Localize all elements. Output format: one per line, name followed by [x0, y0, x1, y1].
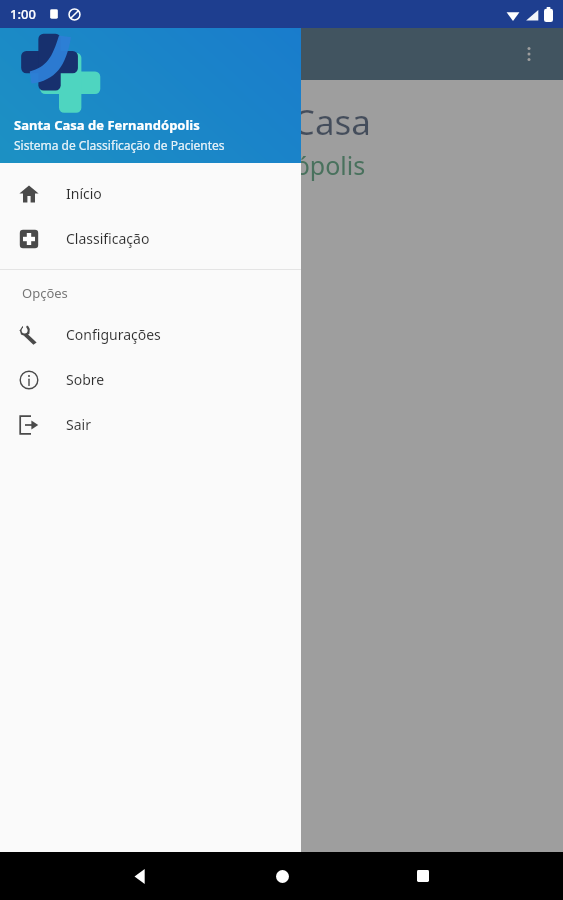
- button[interactable]: More options: [509, 34, 549, 74]
- staticText: Início: [66, 184, 102, 203]
- staticText: 1:00: [10, 5, 36, 23]
- button[interactable]: Home: [262, 856, 302, 896]
- button[interactable]: [0, 28, 563, 852]
- staticText: Fernandópolis: [197, 148, 366, 182]
- staticText: Configurações: [66, 325, 161, 344]
- staticText: Classificação: [66, 229, 150, 248]
- staticText: Sair: [66, 415, 91, 434]
- button[interactable]: Configurações: [0, 312, 301, 357]
- staticText: Santa Casa de Fernandópolis: [14, 116, 200, 134]
- button[interactable]: Sair: [0, 402, 301, 447]
- staticText: Opções: [22, 284, 68, 302]
- button[interactable]: Sobre: [0, 357, 301, 402]
- button[interactable]: Classificação: [0, 216, 301, 261]
- button[interactable]: Início: [0, 171, 301, 216]
- staticText: Santa Casa: [191, 98, 372, 146]
- staticText: Sobre: [66, 370, 105, 389]
- button[interactable]: Recent apps: [403, 856, 443, 896]
- button[interactable]: Santa Casa de Fernandópolis: [0, 28, 301, 163]
- button[interactable]: Back: [120, 856, 160, 896]
- staticText: Sistema de Classificação de Pacientes: [14, 137, 225, 153]
